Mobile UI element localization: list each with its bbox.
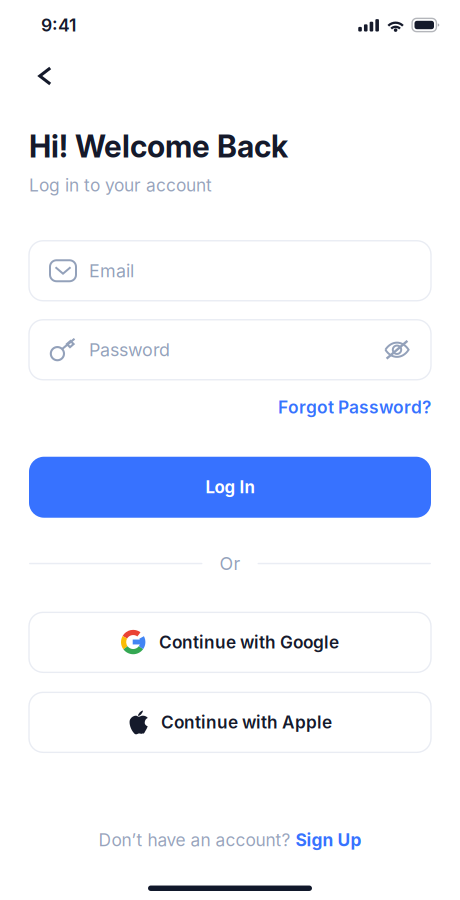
button[interactable]: Continue with Apple: [29, 692, 431, 752]
staticText: 9:41: [41, 14, 76, 36]
button[interactable]: Forgot Password?: [278, 397, 431, 418]
staticText: Continue with Google: [159, 632, 339, 653]
staticText: Continue with Apple: [161, 712, 332, 733]
staticText: Or: [219, 553, 240, 574]
staticText: Email: [89, 260, 134, 281]
staticText: Log In: [205, 477, 254, 497]
staticText: Don’t have an account?: [98, 829, 295, 850]
button[interactable]: Show password: [382, 335, 412, 365]
staticText: Forgot Password?: [278, 397, 431, 418]
staticText: Hi! Welcome Back: [29, 128, 288, 165]
button[interactable]: Log In: [29, 457, 431, 518]
staticText: Log in to your account: [29, 175, 212, 196]
button[interactable]: Sign Up: [295, 829, 361, 850]
staticText: Password: [89, 339, 170, 360]
button[interactable]: Continue with Google: [29, 612, 431, 672]
staticText: Sign Up: [295, 829, 361, 850]
button[interactable]: Back: [24, 55, 66, 97]
